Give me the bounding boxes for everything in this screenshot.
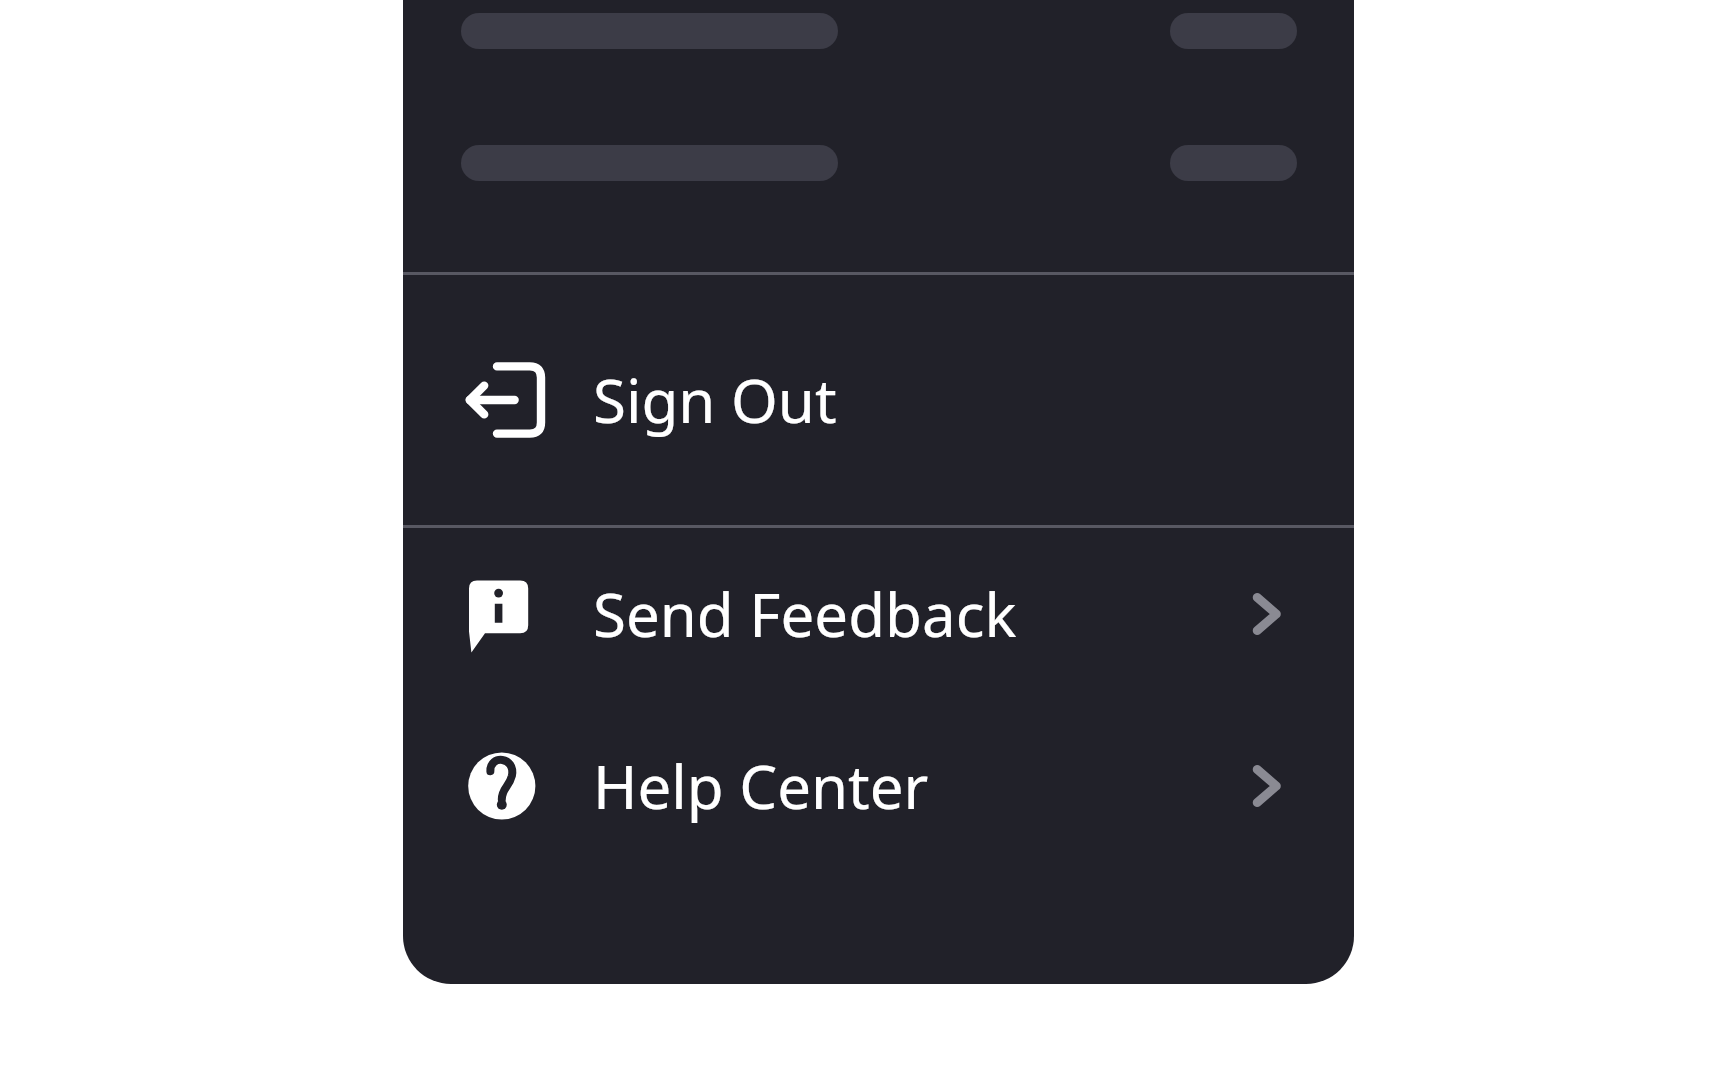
other: Help Center [465, 746, 545, 826]
button[interactable]: Send Feedback [403, 528, 1354, 700]
other: Send Feedback [465, 574, 545, 654]
button[interactable]: Help Center [403, 700, 1354, 872]
staticText: Sign Out [593, 359, 837, 441]
staticText: Send Feedback [593, 573, 1017, 655]
other: Sign Out [465, 360, 545, 440]
button[interactable]: Sign Out [403, 275, 1354, 525]
staticText: Help Center [593, 745, 929, 827]
